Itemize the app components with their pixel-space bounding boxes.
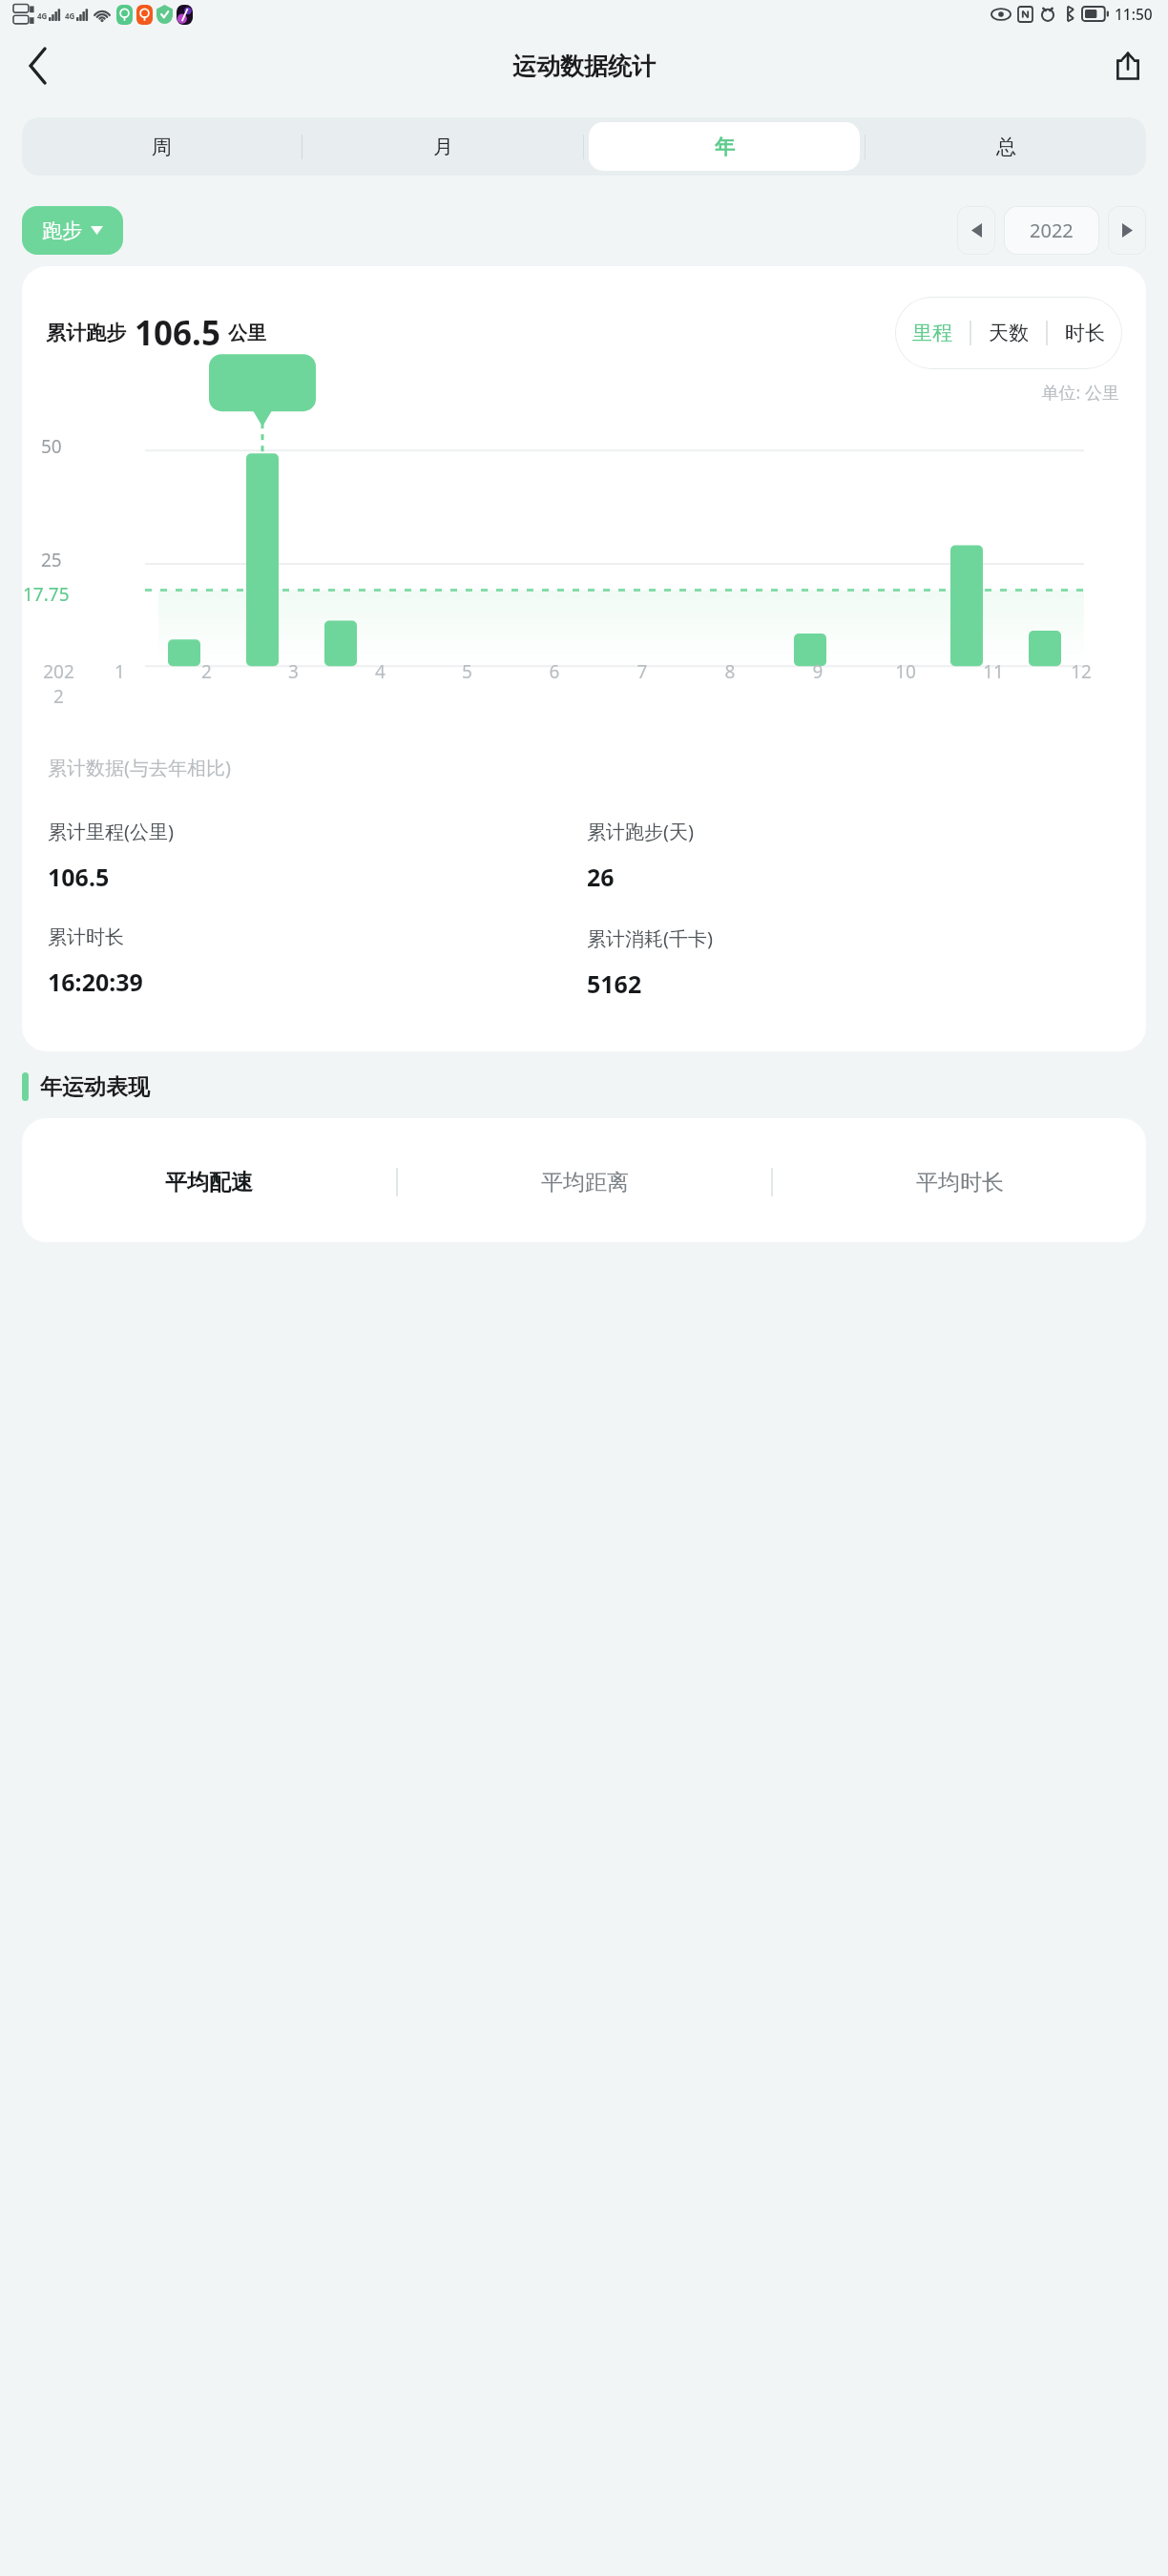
staticText: 4G bbox=[65, 10, 75, 21]
staticText: 4 bbox=[337, 659, 424, 684]
button[interactable]: 2022 bbox=[1004, 206, 1099, 255]
button[interactable]: 平均距离 bbox=[398, 1160, 771, 1204]
staticText: 12 bbox=[1037, 659, 1125, 684]
staticText: 年 bbox=[715, 135, 735, 159]
staticText: 累计跑步(天) bbox=[587, 819, 694, 844]
staticText: 106.5 bbox=[135, 310, 220, 356]
staticText: 10 bbox=[862, 659, 949, 684]
staticText: 2 bbox=[163, 659, 250, 684]
staticText: 1 bbox=[76, 659, 163, 684]
staticText: 7 bbox=[598, 659, 686, 684]
staticText: 106.5 bbox=[48, 861, 110, 893]
staticText: 3 bbox=[250, 659, 337, 684]
button[interactable]: Back bbox=[11, 39, 65, 93]
staticText: 平均配速 bbox=[165, 1169, 253, 1196]
staticText: 11:50 bbox=[1115, 4, 1153, 24]
staticText: 累计时长 bbox=[48, 925, 124, 949]
staticText: 年运动表现 bbox=[40, 1073, 150, 1101]
button[interactable]: 天数 bbox=[989, 297, 1029, 369]
staticText: 运动数据统计 bbox=[512, 52, 656, 81]
staticText: 16:20:39 bbox=[48, 966, 143, 998]
button[interactable]: 平均时长 bbox=[773, 1160, 1146, 1204]
button[interactable]: Previous year bbox=[957, 206, 995, 255]
staticText: 6 bbox=[511, 659, 598, 684]
staticText: 17.75 bbox=[23, 582, 70, 607]
staticText: 5 bbox=[424, 659, 511, 684]
staticText: 5162 bbox=[587, 967, 642, 1000]
button[interactable]: 平均配速 bbox=[22, 1160, 396, 1204]
staticText: 平均时长 bbox=[916, 1169, 1004, 1196]
staticText: 8 bbox=[686, 659, 774, 684]
button[interactable]: 里程 bbox=[912, 297, 952, 369]
staticText: 总 bbox=[996, 135, 1016, 159]
staticText: 里程 bbox=[912, 321, 952, 345]
staticText: 累计消耗(千卡) bbox=[587, 925, 713, 951]
staticText: 累计数据(与去年相比) bbox=[48, 755, 231, 780]
staticText: 时长 bbox=[1065, 321, 1105, 345]
staticText: 2022 bbox=[41, 659, 76, 709]
button[interactable]: 时长 bbox=[1065, 297, 1105, 369]
button[interactable]: Next year bbox=[1108, 206, 1146, 255]
staticText: 周 bbox=[152, 135, 172, 159]
staticText: 25 bbox=[41, 548, 62, 572]
button[interactable]: 跑步 bbox=[42, 206, 103, 255]
staticText: 累计里程(公里) bbox=[48, 819, 174, 844]
staticText: 2022 bbox=[1030, 218, 1074, 243]
button[interactable]: 年 bbox=[589, 122, 860, 171]
staticText: 公里 bbox=[228, 322, 266, 345]
staticText: 4G bbox=[37, 10, 48, 21]
staticText: 50 bbox=[41, 434, 62, 459]
staticText: 平均距离 bbox=[541, 1169, 629, 1196]
button[interactable]: Share bbox=[1101, 39, 1155, 93]
staticText: 26 bbox=[587, 861, 615, 893]
staticText: 跑步 bbox=[42, 218, 82, 243]
staticText: 累计跑步 bbox=[46, 321, 126, 345]
staticText: 月 bbox=[433, 135, 453, 159]
staticText: 天数 bbox=[989, 321, 1029, 345]
button[interactable]: 月 bbox=[307, 122, 578, 171]
staticText: 11 bbox=[949, 659, 1037, 684]
button[interactable]: 周 bbox=[27, 122, 297, 171]
staticText: 9 bbox=[774, 659, 862, 684]
staticText: 单位: 公里 bbox=[22, 381, 1119, 405]
button[interactable]: 总 bbox=[870, 122, 1141, 171]
